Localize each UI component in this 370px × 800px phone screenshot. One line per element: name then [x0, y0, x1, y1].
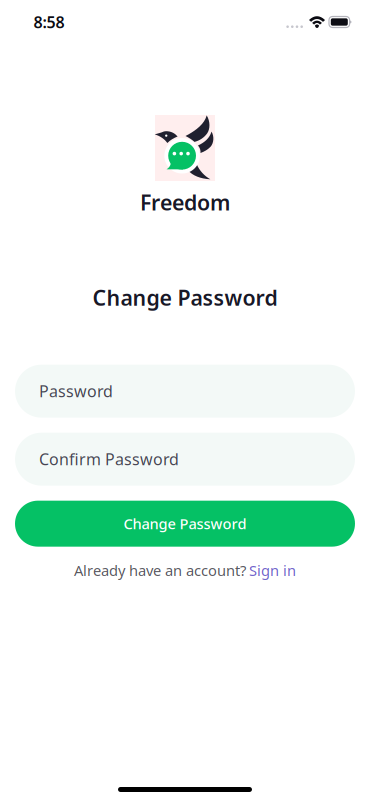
- button[interactable]: Change Password: [15, 501, 355, 547]
- staticText: Sign in: [249, 561, 296, 580]
- staticText: Password: [39, 380, 113, 402]
- staticText: Change Password: [123, 514, 246, 533]
- staticText: Confirm Password: [39, 448, 179, 470]
- staticText: Freedom: [140, 188, 230, 216]
- staticText: 8:58: [33, 11, 64, 33]
- button[interactable]: Already have an account?: [74, 561, 296, 580]
- button[interactable]: Confirm Password: [15, 433, 355, 486]
- staticText: Change Password: [92, 283, 277, 312]
- staticText: Already have an account?: [74, 561, 246, 580]
- button[interactable]: Password: [15, 365, 355, 418]
